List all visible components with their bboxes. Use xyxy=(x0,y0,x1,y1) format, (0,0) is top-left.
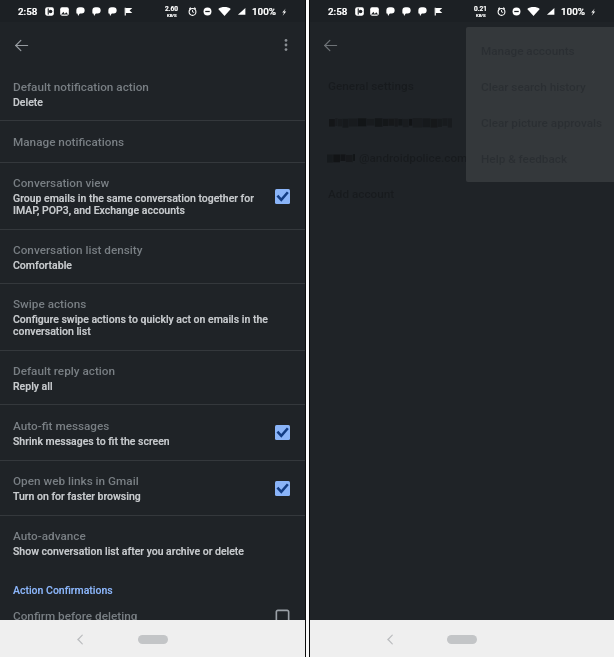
button[interactable]: Conversation view xyxy=(0,163,305,229)
button[interactable]: @androidpolice.com xyxy=(310,140,614,176)
button[interactable]: More options xyxy=(271,30,301,60)
staticText: Turn on for faster browsing xyxy=(13,490,141,502)
button[interactable]: Home xyxy=(436,627,488,651)
staticText: 100% xyxy=(252,6,276,17)
staticText: Manage notifications xyxy=(13,135,124,149)
button[interactable]: Open web links in Gmail xyxy=(0,461,305,515)
staticText: 100% xyxy=(561,6,585,17)
button[interactable]: General settings xyxy=(310,68,614,104)
staticText: Shrink messages to fit the screen xyxy=(13,435,170,447)
staticText: Conversation view xyxy=(13,176,110,190)
button[interactable]: Add account xyxy=(310,176,614,212)
staticText: KB/S xyxy=(167,13,177,18)
button[interactable]: Swipe actions xyxy=(0,284,305,350)
staticText: Comfortable xyxy=(13,259,72,271)
staticText: Configure swipe actions to quickly act o… xyxy=(13,313,268,337)
staticText: Clear search history xyxy=(481,80,586,94)
staticText: Clear picture approvals xyxy=(481,116,603,130)
staticText: Action Confirmations xyxy=(13,584,113,596)
button[interactable]: Default notification action xyxy=(0,68,305,120)
button[interactable] xyxy=(310,104,614,140)
staticText: Show conversation list after you archive… xyxy=(13,545,244,557)
staticText: @androidpolice.com xyxy=(359,151,468,165)
staticText: Conversation list density xyxy=(13,243,143,257)
button[interactable]: Back xyxy=(376,625,404,653)
button[interactable]: Default reply action xyxy=(0,351,305,404)
button[interactable]: Confirm before deleting xyxy=(0,609,305,620)
staticText: Delete xyxy=(13,96,43,108)
staticText: Open web links in Gmail xyxy=(13,474,139,488)
staticText: Confirm before deleting xyxy=(13,609,138,620)
staticText: Auto-fit messages xyxy=(13,419,110,433)
button[interactable]: Action Confirmations xyxy=(0,570,305,609)
button[interactable]: Auto-fit messages xyxy=(0,405,305,460)
staticText: Default notification action xyxy=(13,80,149,94)
staticText: Default reply action xyxy=(13,364,116,378)
button[interactable]: Navigate up xyxy=(6,30,37,61)
staticText: KB/S xyxy=(476,13,486,18)
button[interactable]: Home xyxy=(127,627,179,651)
staticText: Add account xyxy=(328,187,395,201)
button[interactable]: Navigate up xyxy=(315,30,346,61)
button[interactable]: Auto-advance xyxy=(0,516,305,570)
staticText: Swipe actions xyxy=(13,297,87,311)
button[interactable]: Manage notifications xyxy=(0,121,305,162)
staticText: Help & feedback xyxy=(481,152,568,166)
staticText: 0.21 xyxy=(474,5,487,13)
staticText: Auto-advance xyxy=(13,529,86,543)
button[interactable]: Back xyxy=(66,625,94,653)
staticText: General settings xyxy=(328,79,414,93)
staticText: Group emails in the same conversation to… xyxy=(13,192,254,216)
staticText: 2.60 xyxy=(165,5,178,13)
button[interactable]: Conversation list density xyxy=(0,230,305,283)
staticText: Reply all xyxy=(13,380,53,392)
staticText: Manage accounts xyxy=(481,44,575,58)
staticText: 2:58 xyxy=(328,6,348,17)
staticText: 2:58 xyxy=(18,6,38,17)
